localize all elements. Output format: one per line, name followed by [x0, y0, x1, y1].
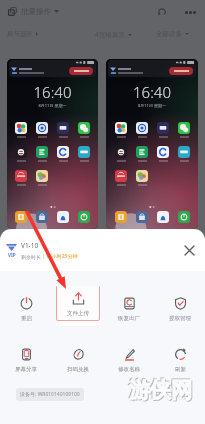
button[interactable]: 全部设备: [156, 30, 189, 38]
staticText: 16:40: [7, 82, 98, 102]
staticText: 修改名称: [118, 366, 140, 373]
staticText: 扫码兑换: [67, 366, 89, 373]
button[interactable]: 刷新: [173, 342, 187, 373]
button[interactable]: More options: [180, 2, 200, 22]
button[interactable]: Close: [178, 239, 200, 261]
button[interactable]: 16:40: [106, 59, 198, 229]
button[interactable]: 刷与选区: [7, 30, 38, 38]
staticText: 文件上传: [67, 310, 89, 317]
button[interactable]: 授权管理: [169, 291, 191, 322]
button[interactable]: 16:40: [7, 59, 98, 229]
button[interactable]: 重启: [19, 291, 33, 322]
staticText: 刷与选区: [7, 30, 33, 38]
button[interactable]: 屏幕分享: [15, 342, 37, 373]
button[interactable]: 恢复出厂: [118, 291, 140, 322]
staticText: 游侠网: [129, 377, 192, 403]
button[interactable]: 扫码兑换: [67, 342, 89, 373]
staticText: 全部设备: [156, 30, 182, 38]
staticText: 游侠网: [130, 378, 193, 404]
staticText: V1-10: [21, 241, 39, 250]
staticText: 8月11日 星期一: [106, 103, 198, 108]
staticText: 重启: [21, 315, 32, 322]
staticText: 游侠网: [128, 376, 191, 402]
staticText: 授权管理: [169, 315, 191, 322]
button[interactable]: Refresh: [152, 2, 172, 22]
staticText: 4宫格展示: [95, 30, 125, 39]
button[interactable]: 修改名称: [118, 342, 140, 373]
staticText: 16:40: [106, 82, 198, 102]
button[interactable]: 文件上传: [56, 286, 100, 321]
staticText: 恢复出厂: [118, 315, 140, 322]
staticText: 批量操作: [21, 7, 51, 16]
staticText: VIP: [8, 252, 16, 258]
staticText: 剩余时长: [21, 254, 41, 260]
staticText: 屏幕分享: [15, 366, 37, 373]
staticText: 设备号: WR010140109100: [20, 391, 80, 398]
staticText: 8月11日 星期一: [7, 103, 98, 108]
staticText: 刷新: [175, 366, 186, 373]
staticText: 17小时25分钟: [46, 253, 78, 260]
button[interactable]: 4宫格展示: [95, 30, 132, 39]
button[interactable]: 设备号: WR010140109100: [16, 388, 84, 401]
button[interactable]: 批量操作: [6, 4, 61, 19]
